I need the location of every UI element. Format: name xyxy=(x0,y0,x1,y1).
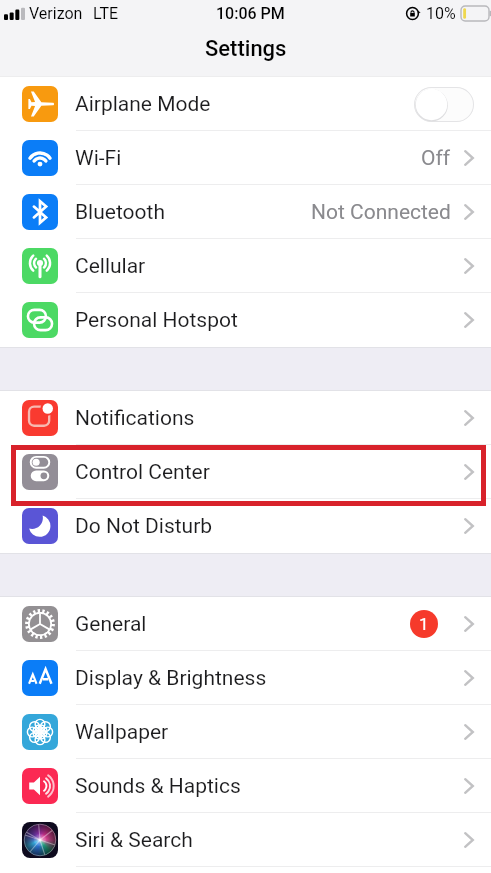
button[interactable]: Control Center xyxy=(0,445,491,499)
button[interactable]: General xyxy=(0,597,491,651)
button[interactable]: Bluetooth xyxy=(0,185,491,239)
button[interactable]: Airplane Mode xyxy=(0,77,491,131)
button[interactable]: Notifications xyxy=(0,391,491,445)
staticText: Wallpaper xyxy=(75,720,169,745)
staticText: Not Connected xyxy=(311,200,451,225)
button[interactable]: Personal Hotspot xyxy=(0,293,491,347)
button[interactable]: Cellular xyxy=(0,239,491,293)
staticText: Verizon xyxy=(29,4,83,23)
button[interactable]: Sounds & Haptics xyxy=(0,759,491,813)
staticText: Off xyxy=(421,146,451,171)
button[interactable]: Wallpaper xyxy=(0,705,491,759)
staticText: Siri & Search xyxy=(75,828,193,853)
staticText: LTE xyxy=(93,4,119,23)
staticText: 10% xyxy=(426,4,456,23)
staticText: Wi-Fi xyxy=(75,146,122,171)
other: Rotation Lock xyxy=(405,6,420,21)
staticText: Bluetooth xyxy=(75,200,165,225)
staticText: Do Not Disturb xyxy=(75,514,213,539)
staticText: Display & Brightness xyxy=(75,666,267,691)
staticText: Settings xyxy=(205,36,287,62)
staticText: Notifications xyxy=(75,406,195,431)
staticText: 10:06 PM xyxy=(216,4,285,23)
button[interactable]: Airplane Mode toggle xyxy=(414,87,474,122)
staticText: General xyxy=(75,612,147,637)
button[interactable]: Siri & Search xyxy=(0,813,491,867)
staticText: Cellular xyxy=(75,254,146,279)
button[interactable]: Wi-Fi xyxy=(0,131,491,185)
staticText: Control Center xyxy=(75,460,210,485)
button[interactable]: Do Not Disturb xyxy=(0,499,491,553)
staticText: Sounds & Haptics xyxy=(75,774,241,799)
button[interactable]: Display & Brightness xyxy=(0,651,491,705)
staticText: Airplane Mode xyxy=(75,92,211,117)
staticText: Personal Hotspot xyxy=(75,308,238,333)
staticText: 1 xyxy=(419,614,429,634)
